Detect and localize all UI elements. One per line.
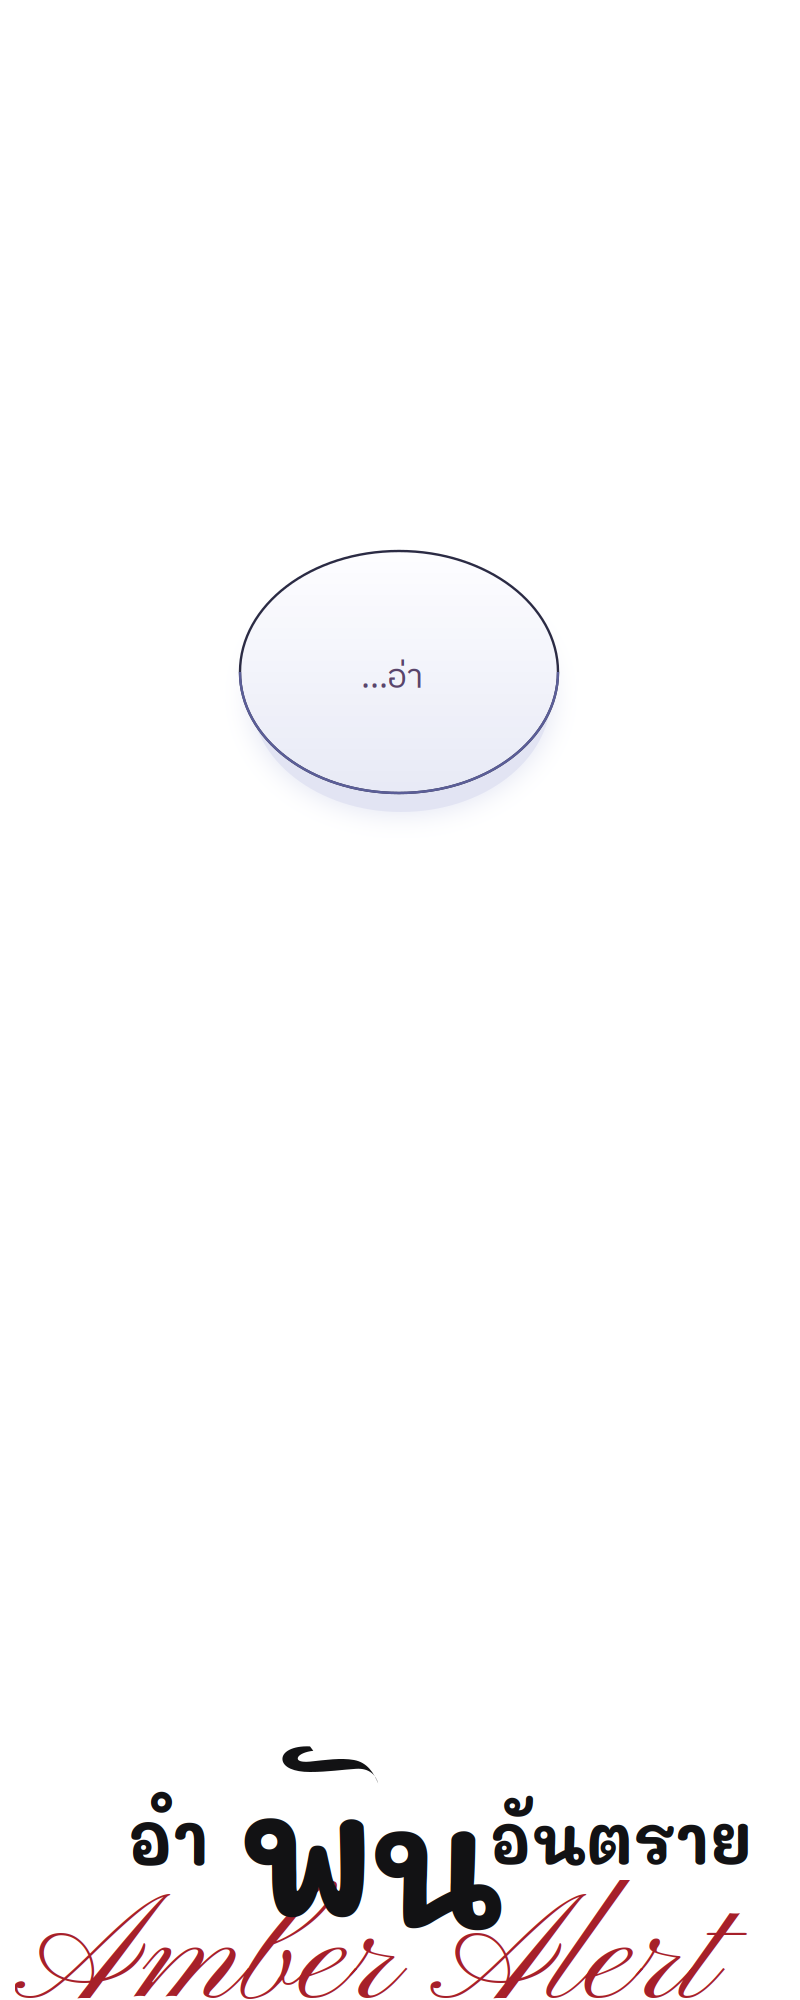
staticText: น	[368, 1754, 503, 1969]
staticText: ...อ่า	[361, 650, 423, 705]
staticText: อันตราย	[488, 1795, 751, 1881]
staticText: Amber Alert	[14, 1868, 715, 2000]
staticText: อำ	[126, 1790, 209, 1884]
staticText: พ	[238, 1744, 374, 1959]
